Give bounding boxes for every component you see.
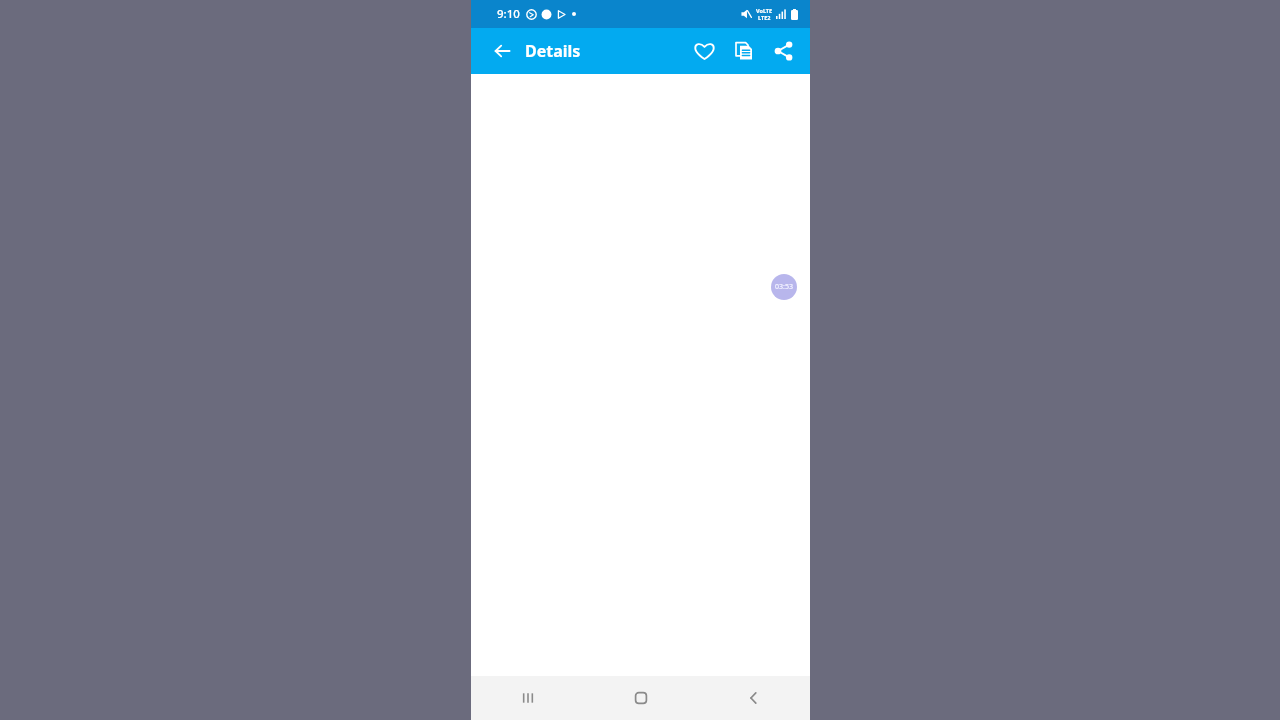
staticText: LTE2 <box>758 14 771 21</box>
staticText: 9:10 <box>497 6 520 22</box>
button[interactable]: Back <box>697 676 810 720</box>
button[interactable]: Share <box>764 31 804 71</box>
button[interactable]: Home <box>584 676 697 720</box>
button[interactable]: Notes <box>724 31 764 71</box>
button[interactable]: 03:53 <box>771 274 797 300</box>
staticText: Details <box>525 40 581 62</box>
button[interactable]: Back <box>483 32 521 70</box>
staticText: 03:53 <box>775 282 793 292</box>
button[interactable]: Recents <box>471 676 584 720</box>
staticText: VoLTE <box>756 7 773 14</box>
button[interactable]: Favorite <box>684 31 724 71</box>
